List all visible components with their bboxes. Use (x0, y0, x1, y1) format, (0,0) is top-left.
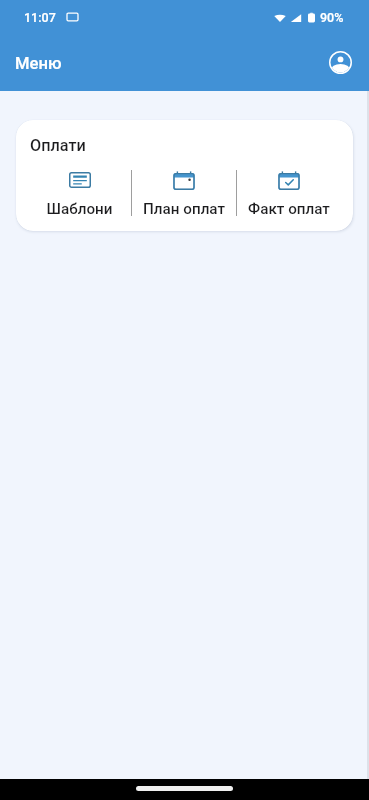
staticText: Факт оплат (248, 200, 330, 217)
button[interactable]: Факт оплат (237, 168, 341, 217)
staticText: Шаблони (46, 200, 113, 217)
staticText: 11:07 (24, 10, 56, 25)
staticText: План оплат (143, 200, 225, 217)
button[interactable]: Account (329, 51, 352, 74)
staticText: 90% (320, 10, 344, 25)
staticText: Оплати (30, 136, 86, 155)
button[interactable]: План оплат (132, 168, 236, 217)
staticText: Меню (15, 54, 62, 73)
button[interactable]: Шаблони (28, 168, 131, 217)
